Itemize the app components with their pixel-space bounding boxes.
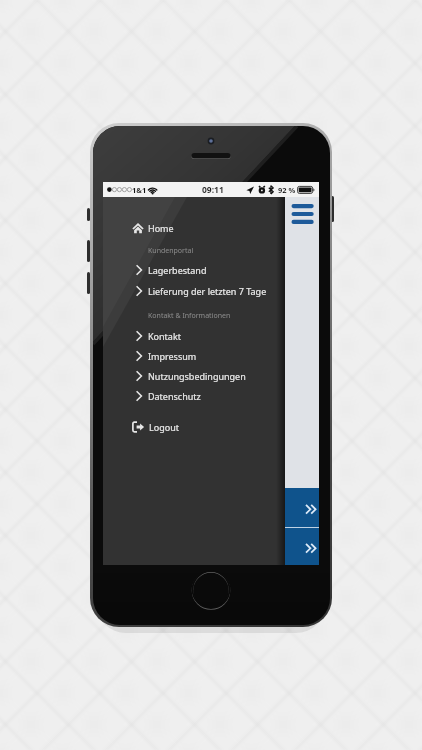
button[interactable]: Kontakt: [103, 326, 285, 346]
staticText: Nutzungsbedingungen: [148, 370, 246, 382]
staticText: Datenschutz: [148, 390, 201, 402]
button[interactable]: Impressum: [103, 346, 285, 366]
button[interactable]: Nutzungsbedingungen: [103, 366, 285, 386]
button[interactable]: Open navigation menu: [285, 199, 319, 231]
staticText: 92 %: [278, 185, 296, 195]
button[interactable]: Next: [285, 488, 319, 527]
staticText: Lagerbestand: [148, 264, 207, 276]
button[interactable]: Lieferung der letzten 7 Tage: [103, 281, 285, 301]
button[interactable]: Home: [103, 218, 285, 238]
staticText: Logout: [149, 421, 179, 433]
staticText: Home: [148, 222, 174, 234]
staticText: Kontakt & Informationen: [148, 311, 231, 321]
button[interactable]: Datenschutz: [103, 386, 285, 406]
staticText: Kontakt: [148, 330, 181, 342]
button[interactable]: Next: [285, 528, 319, 565]
button[interactable]: Logout: [103, 417, 285, 437]
staticText: Kundenportal: [148, 246, 194, 256]
staticText: 09:11: [202, 184, 224, 196]
staticText: 1&1: [132, 185, 147, 195]
button[interactable]: Lagerbestand: [103, 260, 285, 280]
staticText: Impressum: [148, 350, 197, 362]
staticText: Lieferung der letzten 7 Tage: [148, 285, 267, 297]
